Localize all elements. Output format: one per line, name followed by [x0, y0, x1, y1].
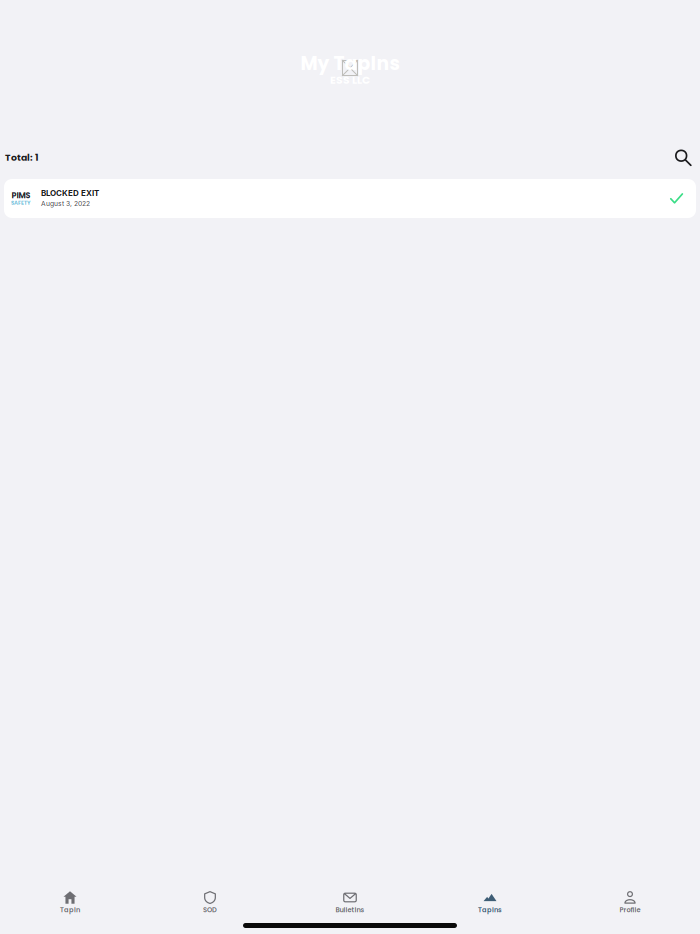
- image: [342, 60, 358, 76]
- staticText: Profile: [619, 905, 640, 915]
- button[interactable]: Bulletins: [280, 868, 420, 913]
- button[interactable]: Search: [666, 140, 700, 174]
- staticText: SAFETY: [11, 199, 31, 207]
- button[interactable]: Tapins: [420, 868, 560, 913]
- button[interactable]: PIMS: [4, 179, 696, 218]
- staticText: Tapins: [478, 905, 502, 915]
- staticText: Total: 1: [5, 151, 39, 164]
- button[interactable]: TapIn: [0, 868, 140, 913]
- staticText: TapIn: [60, 905, 80, 915]
- staticText: PIMS: [11, 190, 30, 201]
- staticText: ESS LLC: [330, 72, 370, 87]
- staticText: BLOCKED EXIT: [41, 188, 99, 198]
- staticText: Bulletins: [335, 905, 364, 915]
- staticText: August 3, 2022: [41, 199, 90, 208]
- button[interactable]: SOD: [140, 868, 280, 913]
- button[interactable]: Profile: [560, 868, 700, 913]
- staticText: My TapIns: [300, 50, 399, 76]
- staticText: SOD: [203, 905, 217, 915]
